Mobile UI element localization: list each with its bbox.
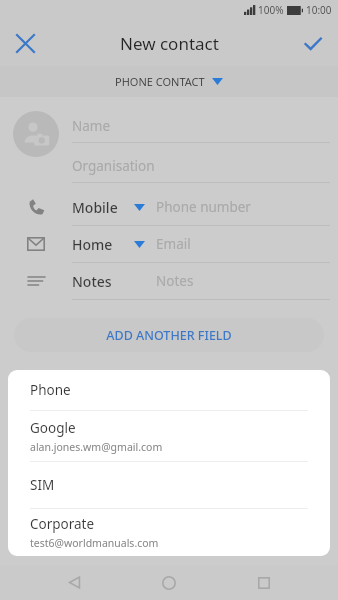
staticText: Phone [30,381,71,399]
staticText: Notes [156,272,194,290]
button[interactable]: Name [72,105,330,143]
button[interactable]: Home [0,226,338,263]
staticText: Organisation [72,157,155,175]
button[interactable]: Notes [0,263,338,300]
staticText: Email [156,235,191,253]
button[interactable]: Close [10,28,40,58]
button[interactable]: Mobile [0,189,338,226]
staticText: Google [30,419,76,437]
button[interactable]: Phone [8,370,330,410]
button[interactable]: Organisation [72,143,330,183]
staticText: ADD ANOTHER FIELD [106,327,232,344]
button[interactable]: Save contact [298,28,328,58]
staticText: PHONE CONTACT [115,74,205,89]
staticText: Notes [72,272,156,291]
staticText: 10:00 [306,3,332,17]
staticText: Mobile [72,198,134,217]
staticText: SIM [30,476,55,494]
staticText: New contact [120,32,219,55]
button[interactable]: PHONE CONTACT [0,66,338,97]
button[interactable]: Add photo [13,111,59,157]
button[interactable]: SIM [8,462,330,508]
button[interactable]: ADD ANOTHER FIELD [14,318,324,352]
button[interactable]: Corporate [8,509,330,556]
staticText: test6@worldmanuals.com [30,536,159,550]
staticText: alan.jones.wm@gmail.com [30,440,163,454]
button[interactable]: Back [53,565,95,600]
staticText: Home [72,235,134,254]
staticText: 100% [258,3,284,17]
button[interactable]: Recent apps [243,565,285,600]
button[interactable]: Google [8,411,330,461]
staticText: Corporate [30,515,95,533]
staticText: Name [72,117,111,135]
staticText: Phone number [156,198,251,216]
button[interactable]: Home [148,565,190,600]
